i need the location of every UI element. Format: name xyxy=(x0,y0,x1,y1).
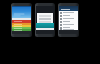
button[interactable] xyxy=(60,20,77,23)
button[interactable] xyxy=(60,29,77,30)
button[interactable] xyxy=(12,27,31,29)
button[interactable] xyxy=(60,23,77,26)
button[interactable] xyxy=(37,13,53,23)
button[interactable]: Colourful categories screen xyxy=(11,3,32,37)
button[interactable] xyxy=(12,23,31,25)
button[interactable]: Dialog screen xyxy=(35,3,55,37)
button[interactable] xyxy=(60,17,77,20)
button[interactable] xyxy=(36,23,54,28)
button[interactable] xyxy=(12,25,31,27)
button[interactable] xyxy=(59,6,78,11)
button[interactable] xyxy=(60,26,77,29)
button[interactable] xyxy=(60,14,77,17)
button[interactable] xyxy=(60,11,77,14)
button[interactable]: List screen xyxy=(58,3,79,37)
button[interactable] xyxy=(12,29,31,31)
button[interactable] xyxy=(12,20,31,23)
